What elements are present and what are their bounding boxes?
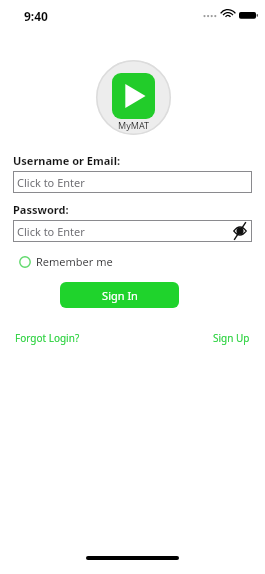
button[interactable]: Click to Enter xyxy=(13,220,252,242)
staticText: MyMAT xyxy=(118,119,150,131)
staticText: Password: xyxy=(13,202,69,217)
button[interactable]: Sign In xyxy=(60,282,179,308)
staticText: Sign In xyxy=(102,288,138,303)
staticText: Sign Up xyxy=(213,331,250,345)
button[interactable]: Click to Enter xyxy=(13,171,252,193)
button[interactable]: Forgot Login? xyxy=(13,329,82,347)
button[interactable]: Remember me xyxy=(18,252,114,271)
staticText: Forgot Login? xyxy=(15,331,80,345)
button[interactable]: Sign Up xyxy=(211,329,252,347)
button[interactable]: Show password xyxy=(233,224,247,238)
staticText: Username or Email: xyxy=(13,153,120,168)
staticText: Remember me xyxy=(36,254,113,269)
staticText: Click to Enter xyxy=(17,175,85,190)
staticText: 9:40 xyxy=(24,8,48,24)
staticText: Click to Enter xyxy=(17,224,85,239)
